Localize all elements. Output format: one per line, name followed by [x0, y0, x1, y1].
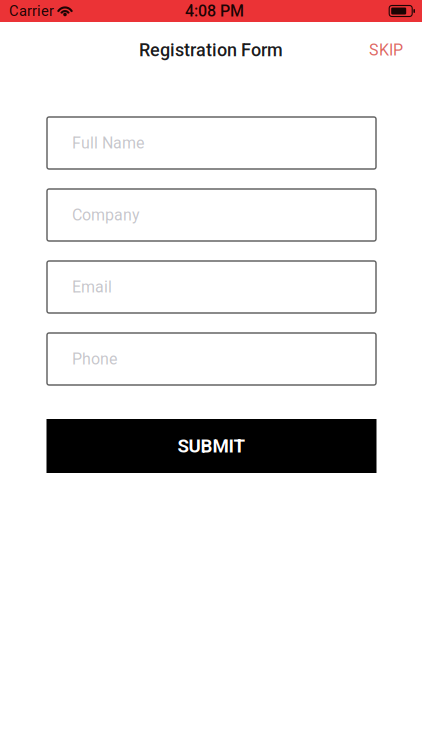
- staticText: Email: [72, 278, 112, 296]
- staticText: Company: [72, 206, 140, 224]
- staticText: Full Name: [72, 134, 144, 152]
- staticText: SUBMIT: [177, 435, 245, 457]
- staticText: Registration Form: [139, 39, 283, 61]
- staticText: Phone: [72, 350, 117, 368]
- staticText: SKIP: [369, 41, 403, 59]
- staticText: Carrier: [9, 2, 54, 20]
- button[interactable]: SKIP: [355, 31, 422, 69]
- button[interactable]: SUBMIT: [46, 419, 376, 473]
- staticText: 4:08 PM: [185, 2, 244, 20]
